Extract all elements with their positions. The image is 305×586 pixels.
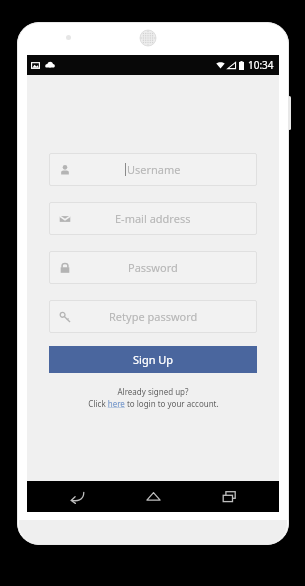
staticText: Retype password	[109, 309, 198, 324]
button[interactable]: Click here to login to your account.	[27, 398, 279, 409]
button[interactable]: Retype password	[49, 300, 257, 333]
button[interactable]: Back	[51, 481, 103, 512]
staticText: Sign Up	[133, 352, 174, 367]
staticText: Username	[127, 162, 181, 177]
staticText: Already signed up?	[27, 386, 279, 397]
staticText: Click here to login to your account.	[88, 398, 219, 409]
button[interactable]: Recent apps	[203, 481, 255, 512]
button[interactable]: E-mail address	[49, 202, 257, 235]
staticText: E-mail address	[115, 211, 191, 226]
button[interactable]: Sign Up	[49, 346, 257, 373]
button[interactable]: Password	[49, 251, 257, 284]
staticText: Password	[128, 260, 178, 275]
staticText: 10:34	[248, 58, 274, 72]
button[interactable]: Home	[127, 481, 179, 512]
button[interactable]: Username	[49, 153, 257, 186]
